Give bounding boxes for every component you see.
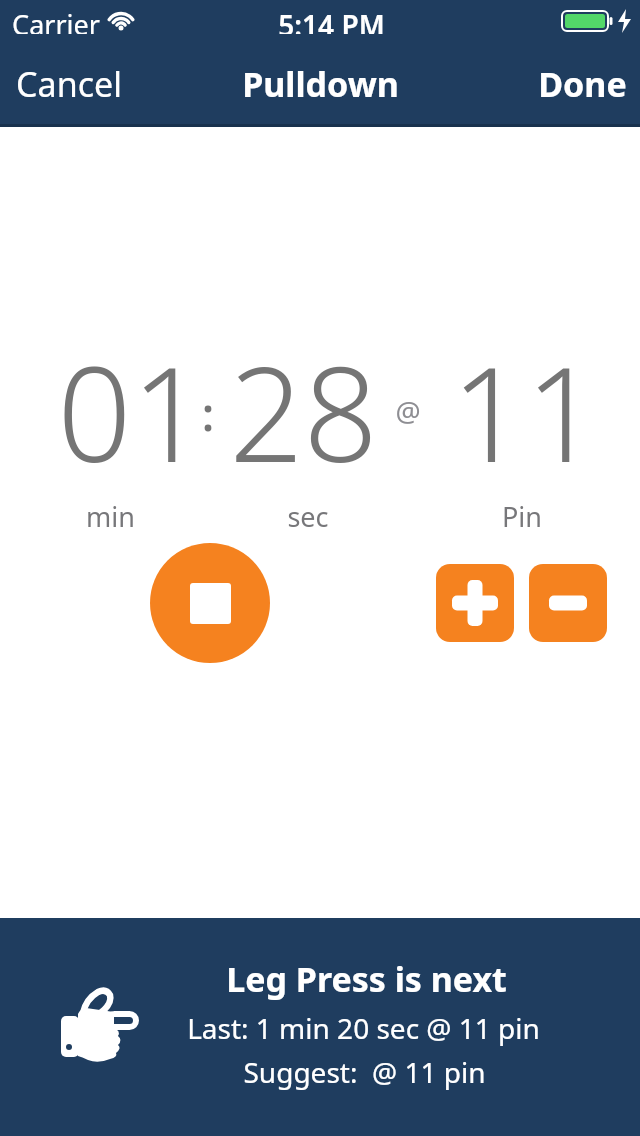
staticText: @: [395, 392, 421, 428]
staticText: Pulldown: [242, 61, 399, 107]
staticText: Done: [538, 61, 627, 107]
button[interactable]: [436, 564, 514, 642]
staticText: Leg Press is next: [226, 956, 507, 1000]
staticText: Cancel: [16, 61, 122, 107]
button[interactable]: Done: [500, 58, 630, 110]
staticText: Carrier: [12, 6, 100, 34]
staticText: 01: [57, 323, 206, 473]
button[interactable]: [150, 543, 270, 663]
button[interactable]: Cancel: [10, 58, 140, 110]
staticText: min: [86, 498, 135, 530]
staticText: Last: 1 min 20 sec @ 11 pin: [187, 1009, 540, 1047]
staticText: 5:14 PM: [278, 6, 385, 34]
staticText: 11: [451, 323, 600, 473]
staticText: 28: [229, 323, 378, 473]
staticText: sec: [287, 498, 329, 530]
button[interactable]: [529, 564, 607, 642]
staticText: Suggest: @ 11 pin: [243, 1053, 486, 1091]
staticText: Pin: [502, 498, 542, 530]
